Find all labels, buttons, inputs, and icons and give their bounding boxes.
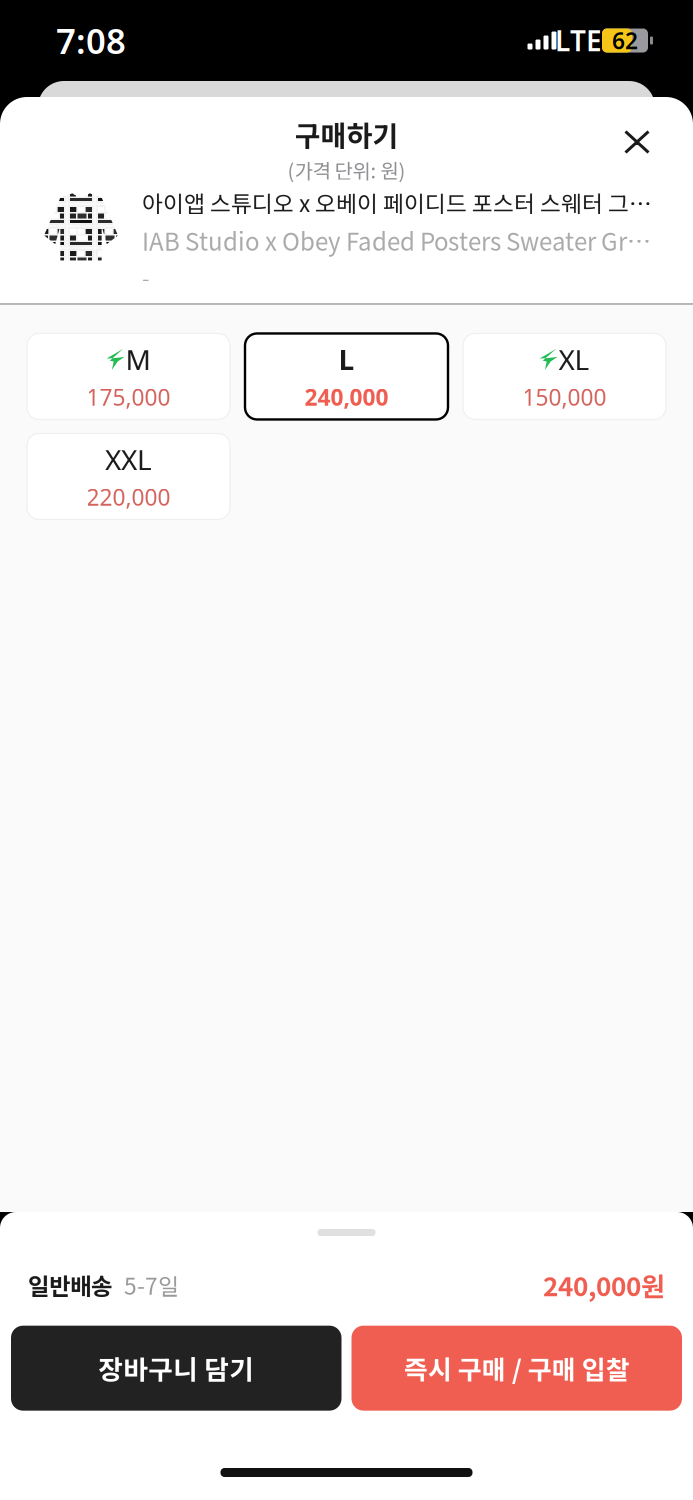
button[interactable]: L [245, 333, 448, 419]
staticText: 장바구니 담기 [98, 1349, 254, 1387]
staticText: 즉시 구매 / 구매 입찰 [404, 1349, 630, 1387]
staticText: IAB Studio x Obey Faded Posters Sweater … [142, 223, 657, 258]
staticText: L [338, 341, 354, 378]
staticText: XL [558, 341, 589, 378]
staticText: (가격 단위: 원) [287, 155, 405, 184]
staticText: 5-7일 [124, 1268, 179, 1301]
staticText: 일반배송 [28, 1268, 112, 1302]
staticText: 7:08 [56, 17, 126, 63]
staticText: M [125, 341, 150, 378]
button[interactable]: 즉시 구매 / 구매 입찰 [351, 1326, 682, 1411]
button[interactable]: Close [610, 115, 664, 169]
button[interactable]: 장바구니 담기 [11, 1326, 341, 1411]
button[interactable]: XXL [27, 433, 230, 519]
staticText: 62 [612, 25, 638, 55]
staticText: 아이앱 스튜디오 x 오베이 페이디드 포스터 스웨터 그레... [142, 186, 657, 219]
staticText: 150,000 [522, 382, 606, 412]
staticText: 구매하기 [294, 114, 398, 154]
staticText: XXL [105, 441, 152, 478]
button[interactable]: M [27, 333, 230, 419]
staticText: 240,000원 [543, 1266, 665, 1304]
staticText: - [142, 262, 149, 292]
staticText: 220,000 [86, 482, 170, 512]
staticText: LTE [555, 22, 602, 59]
button[interactable]: XL [463, 333, 666, 419]
staticText: 175,000 [86, 382, 170, 412]
staticText: 240,000 [304, 382, 388, 412]
